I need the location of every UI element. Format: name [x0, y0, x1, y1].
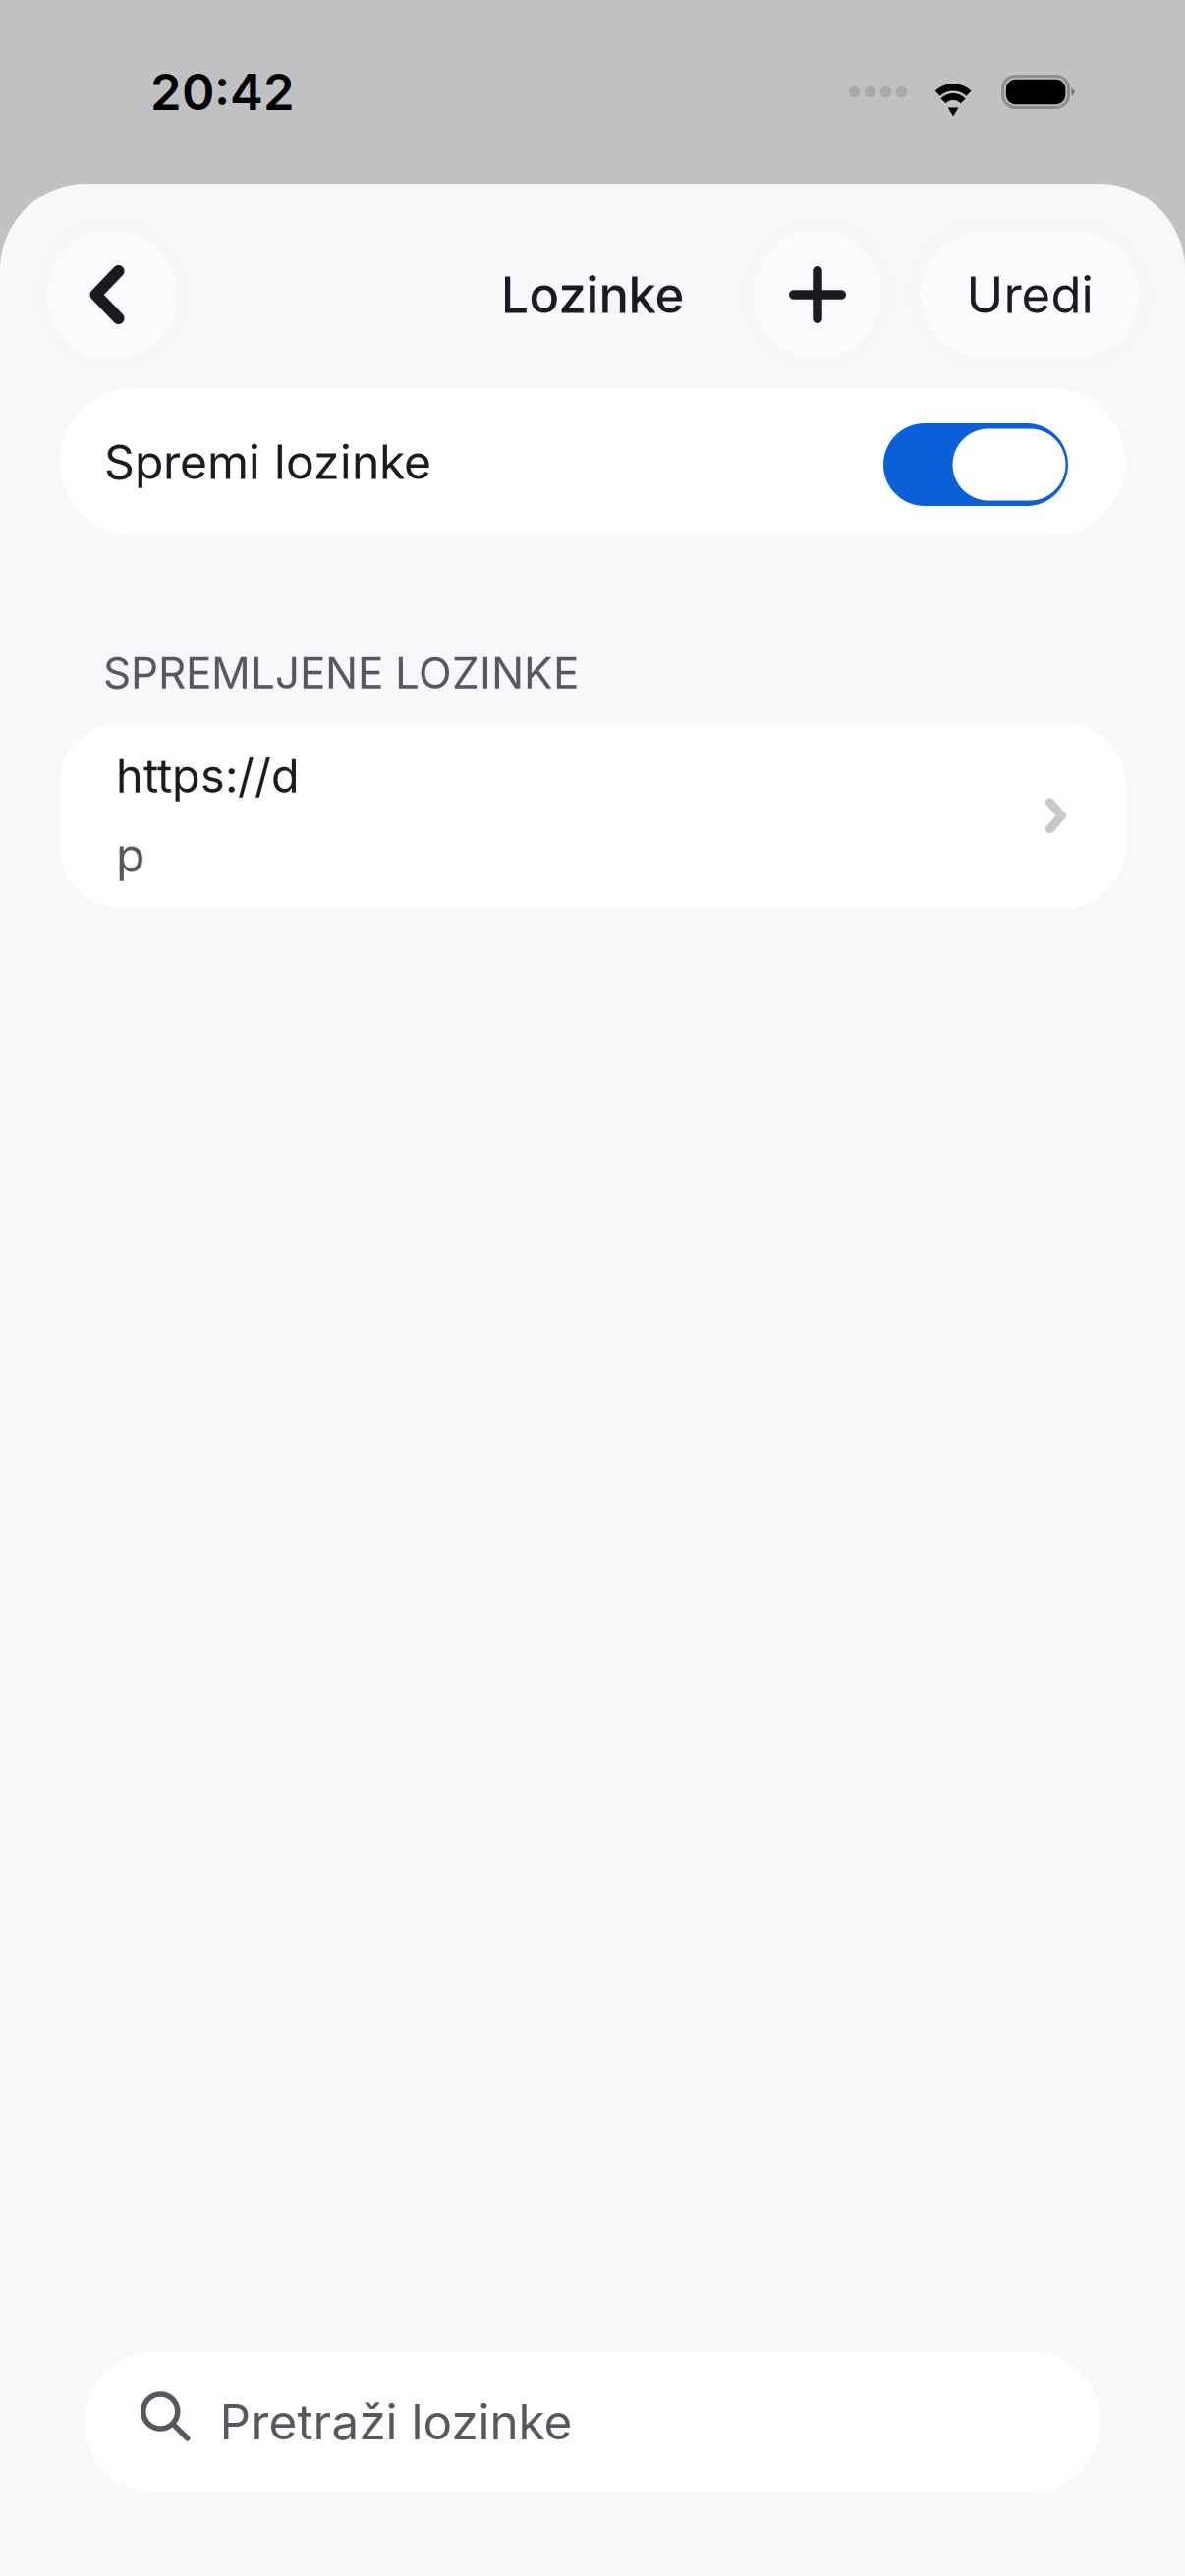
staticText: Pretraži lozinke [220, 2392, 572, 2451]
staticText: https://d [116, 748, 300, 804]
button[interactable]: Pretraži lozinke [85, 2352, 1100, 2492]
button[interactable]: https://d [60, 723, 1125, 908]
staticText: Uredi [966, 265, 1093, 325]
button[interactable]: Spremi lozinke [60, 388, 1125, 535]
staticText: SPREMLJENE LOZINKE [103, 646, 579, 699]
button[interactable]: Natrag [47, 230, 177, 360]
staticText: Lozinke [501, 265, 684, 325]
staticText: 20:42 [150, 62, 295, 122]
button[interactable]: Dodaj lozinku [754, 231, 881, 359]
button[interactable]: Uredi [921, 231, 1139, 359]
staticText: Spremi lozinke [104, 433, 431, 490]
staticText: p [116, 826, 144, 883]
